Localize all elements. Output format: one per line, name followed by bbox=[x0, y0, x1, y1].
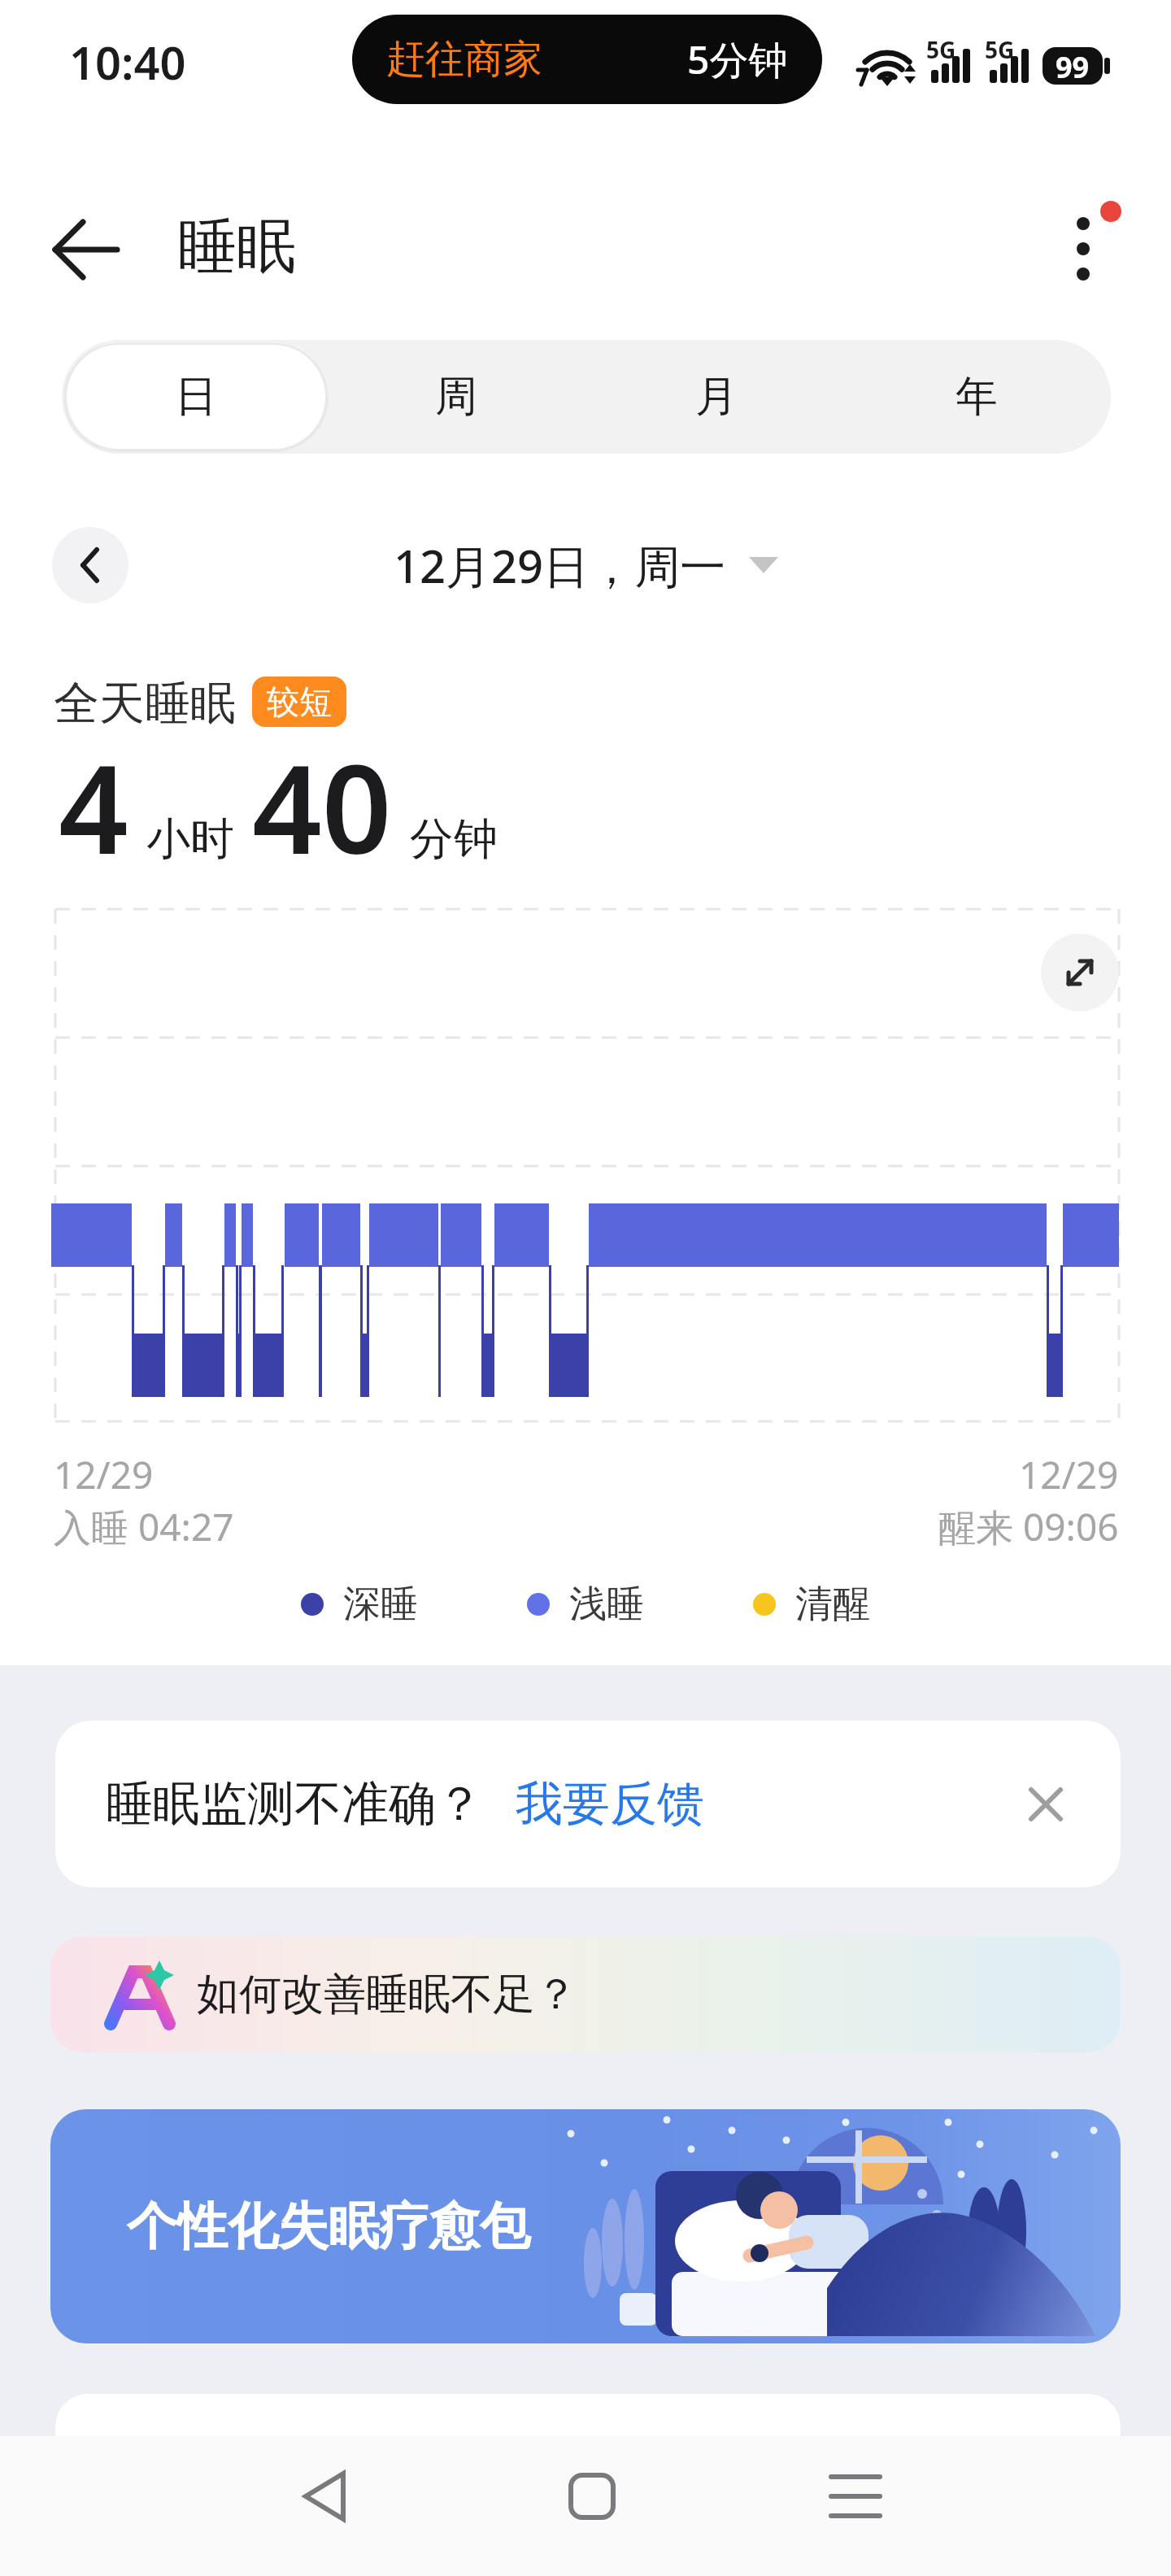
button[interactable] bbox=[1049, 195, 1138, 301]
button[interactable]: 日 bbox=[67, 345, 325, 449]
button[interactable]: 周 bbox=[327, 345, 585, 449]
staticText: 年 bbox=[956, 370, 998, 424]
staticText: 赶往商家 bbox=[386, 35, 542, 84]
staticText: 深睡 bbox=[343, 1581, 418, 1628]
staticText: 醒来 09:06 bbox=[938, 1501, 1119, 1547]
button[interactable]: 12月29日，周一 bbox=[325, 527, 846, 603]
staticText: 99 bbox=[1056, 47, 1090, 85]
staticText: 睡眠监测不准确？ bbox=[106, 1774, 483, 1834]
staticText: 40 bbox=[252, 724, 392, 890]
button[interactable]: 年 bbox=[847, 345, 1106, 449]
button[interactable] bbox=[535, 2439, 649, 2553]
button[interactable]: 个性化失眠疗愈包 bbox=[50, 2109, 1121, 2343]
staticText: 入睡 04:27 bbox=[54, 1501, 234, 1552]
staticText: 日 bbox=[175, 370, 217, 424]
button[interactable]: 如何改善睡眠不足？ bbox=[50, 1937, 1121, 2052]
button[interactable]: 月 bbox=[587, 345, 846, 449]
staticText: 12/29 bbox=[1019, 1449, 1119, 1495]
staticText: 全天睡眠 bbox=[54, 675, 236, 733]
staticText: 分钟 bbox=[410, 812, 498, 867]
button[interactable] bbox=[1041, 933, 1119, 1012]
staticText: 4 bbox=[59, 724, 128, 890]
button[interactable]: 我要反馈 bbox=[516, 1774, 704, 1834]
staticText: 个性化失眠疗愈包 bbox=[127, 2195, 530, 2258]
button[interactable] bbox=[268, 2439, 382, 2553]
staticText: 睡眠 bbox=[177, 210, 296, 285]
button[interactable] bbox=[1028, 1786, 1064, 1822]
staticText: 月 bbox=[695, 370, 738, 424]
staticText: 较短 bbox=[267, 681, 332, 722]
staticText: 如何改善睡眠不足？ bbox=[197, 1968, 577, 2021]
button[interactable] bbox=[33, 207, 138, 297]
staticText: 清醒 bbox=[795, 1581, 870, 1628]
staticText: 周 bbox=[435, 370, 477, 424]
button[interactable]: 赶往商家 bbox=[352, 15, 822, 104]
staticText: 12月29日，周一 bbox=[394, 534, 726, 596]
staticText: 浅睡 bbox=[569, 1581, 644, 1628]
staticText: 5分钟 bbox=[687, 33, 788, 86]
staticText: 5G bbox=[926, 34, 956, 65]
button[interactable] bbox=[799, 2439, 912, 2553]
staticText: 12/29 bbox=[54, 1449, 154, 1500]
button[interactable]: 睡眠监测不准确？ bbox=[55, 1721, 1121, 1887]
staticText: 10:40 bbox=[69, 31, 186, 93]
button[interactable] bbox=[52, 527, 128, 603]
staticText: 小时 bbox=[146, 812, 234, 867]
staticText: 5G bbox=[985, 34, 1015, 65]
